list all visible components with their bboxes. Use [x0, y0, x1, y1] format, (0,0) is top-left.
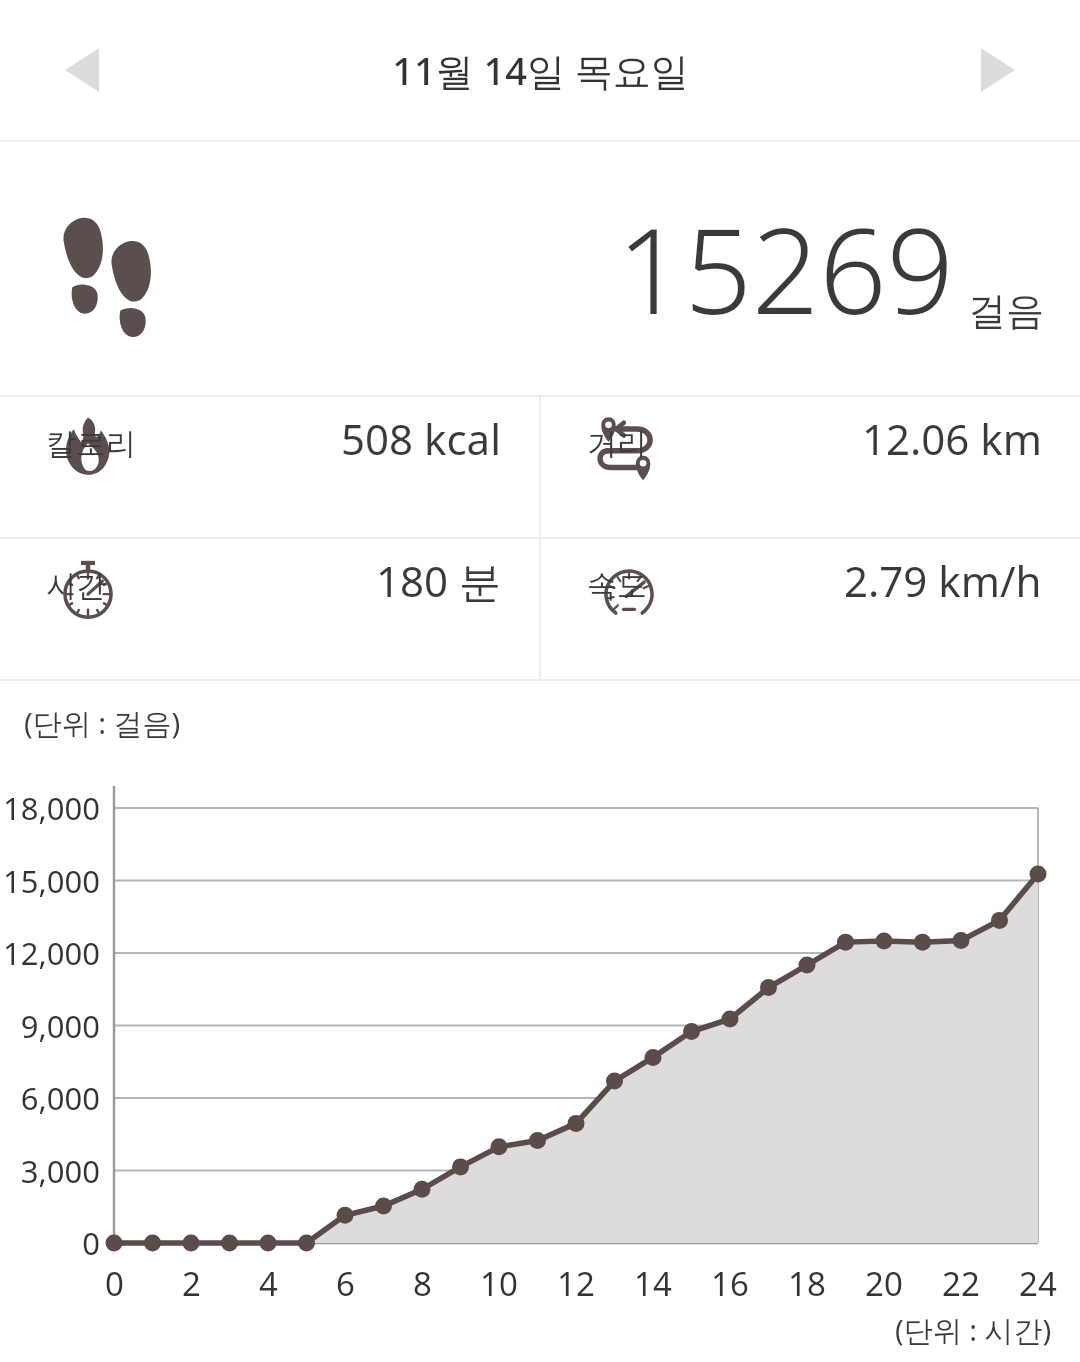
staticText: 8 [413, 1261, 432, 1306]
staticText: 10 [480, 1261, 518, 1306]
staticText: 20 [865, 1261, 903, 1306]
staticText: 14 [634, 1261, 672, 1306]
button[interactable]: 거리 [541, 397, 1080, 479]
staticText: 9,000 [20, 1005, 100, 1047]
button[interactable]: 속도 [541, 539, 1080, 621]
staticText: 시간 [46, 567, 106, 605]
staticText: (단위 : 시간) [895, 1310, 1052, 1350]
staticText: 걸음 [968, 287, 1044, 335]
staticText: 2 [182, 1261, 201, 1306]
staticText: 4 [259, 1261, 278, 1306]
staticText: 11월 14일 목요일 [392, 44, 689, 96]
staticText: 15269 [617, 188, 954, 349]
staticText: 180 분 [376, 552, 501, 609]
staticText: 12 [557, 1261, 595, 1306]
button[interactable]: 칼로리 [0, 397, 539, 479]
staticText: 3,000 [20, 1150, 100, 1192]
staticText: 12,000 [3, 932, 100, 974]
staticText: 0 [105, 1261, 124, 1306]
staticText: 15,000 [3, 860, 100, 902]
staticText: 2.79 km/h [844, 552, 1042, 609]
staticText: 22 [942, 1261, 980, 1306]
button[interactable]: Next day [956, 28, 1040, 112]
staticText: 18 [788, 1261, 826, 1306]
staticText: 거리 [587, 425, 647, 463]
staticText: 6,000 [20, 1077, 100, 1119]
staticText: (단위 : 걸음) [24, 703, 181, 743]
button[interactable]: 시간 [0, 539, 539, 621]
button[interactable]: Previous day [40, 28, 124, 112]
button[interactable]: 15269 [0, 142, 1080, 395]
staticText: 6 [336, 1261, 355, 1306]
staticText: 16 [711, 1261, 749, 1306]
staticText: 속도 [587, 567, 647, 605]
staticText: 24 [1019, 1261, 1057, 1306]
staticText: 12.06 km [862, 410, 1042, 467]
staticText: 508 kcal [341, 410, 501, 467]
staticText: 칼로리 [46, 425, 136, 463]
staticText: 0 [82, 1222, 100, 1264]
staticText: 18,000 [3, 787, 100, 829]
